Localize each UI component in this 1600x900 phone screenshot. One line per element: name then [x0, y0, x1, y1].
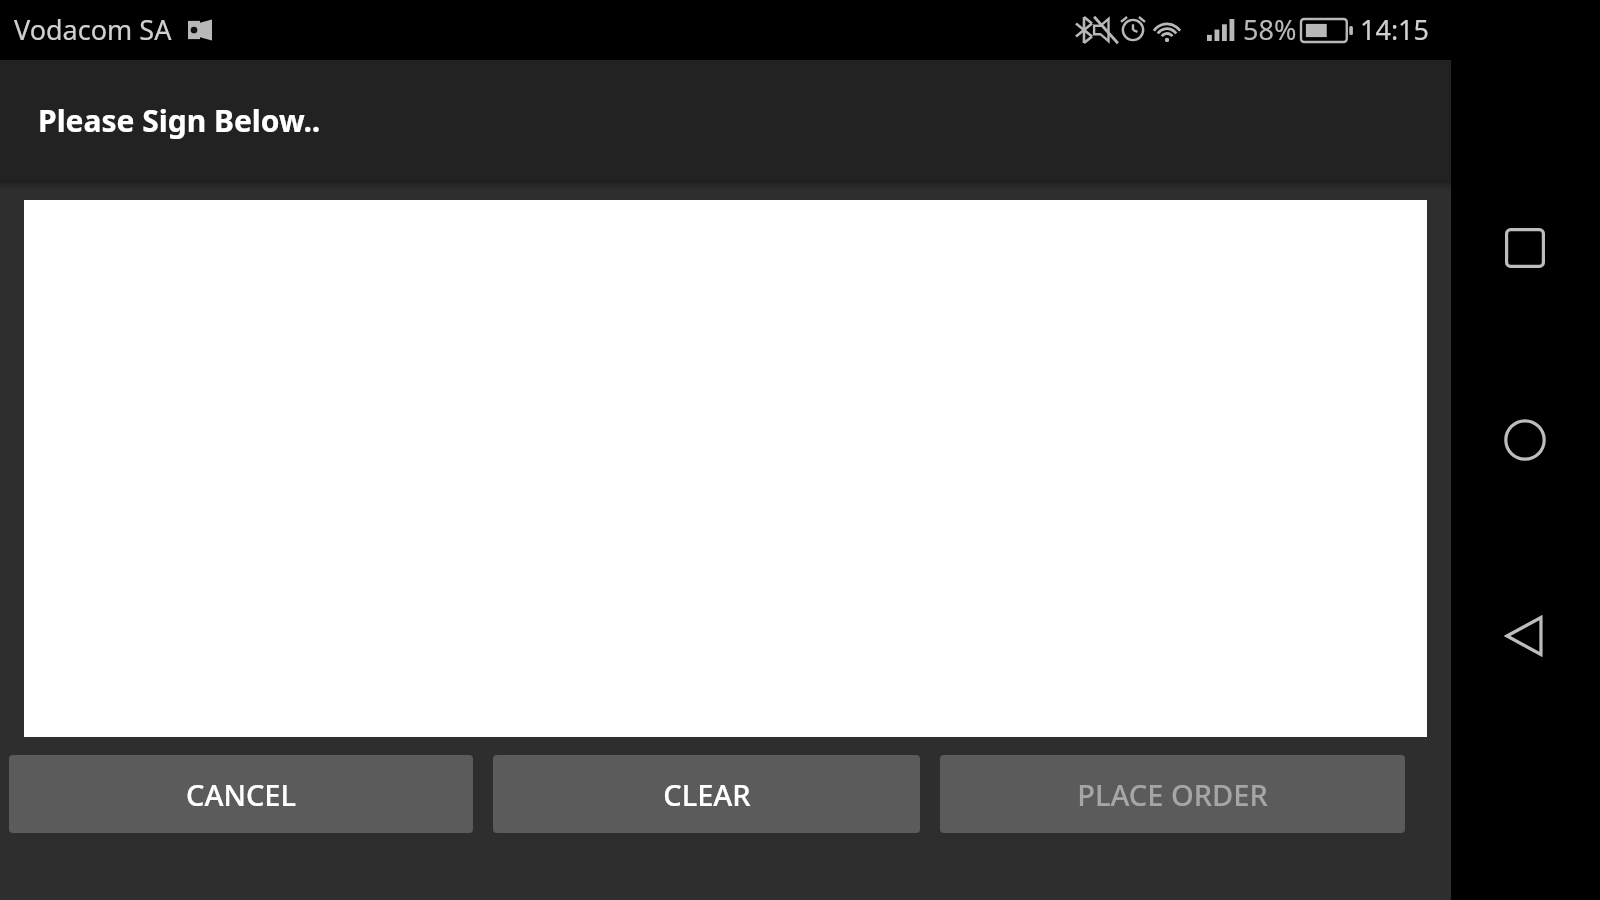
- button[interactable]: CLEAR: [493, 755, 920, 833]
- button[interactable]: PLACE ORDER: [940, 755, 1405, 833]
- button[interactable]: Back: [1489, 600, 1561, 672]
- staticText: Please Sign Below..: [38, 100, 321, 141]
- staticText: CLEAR: [663, 775, 751, 814]
- staticText: CANCEL: [186, 775, 296, 814]
- button[interactable]: CANCEL: [9, 755, 473, 833]
- staticText: 14:15: [1360, 11, 1430, 48]
- staticText: Vodacom SA: [14, 11, 172, 48]
- button[interactable]: Home: [1489, 404, 1561, 476]
- staticText: 58%: [1243, 11, 1297, 48]
- button[interactable]: Recent apps: [1489, 212, 1561, 284]
- staticText: PLACE ORDER: [1077, 775, 1268, 814]
